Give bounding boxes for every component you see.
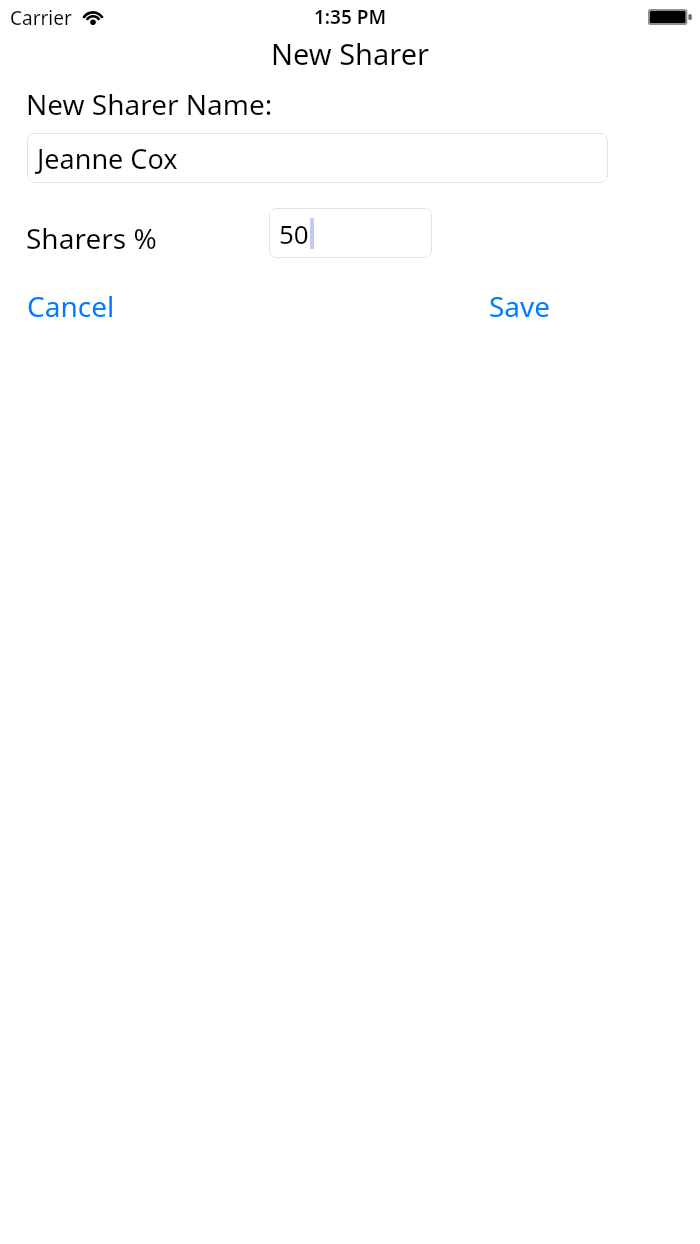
button[interactable]: Cancel [27, 285, 115, 327]
staticText: New Sharer [271, 34, 429, 73]
button[interactable]: 50 [269, 208, 432, 258]
staticText: Sharers % [26, 219, 157, 257]
staticText: New Sharer Name: [26, 85, 273, 123]
staticText: 50 [279, 216, 309, 251]
staticText: Jeanne Cox [37, 140, 178, 177]
button[interactable]: Jeanne Cox [27, 133, 608, 183]
staticText: Save [489, 287, 551, 325]
staticText: Carrier [10, 5, 72, 31]
button[interactable]: Save [489, 285, 551, 327]
staticText: Cancel [27, 287, 115, 325]
staticText: 1:35 PM [314, 4, 387, 30]
